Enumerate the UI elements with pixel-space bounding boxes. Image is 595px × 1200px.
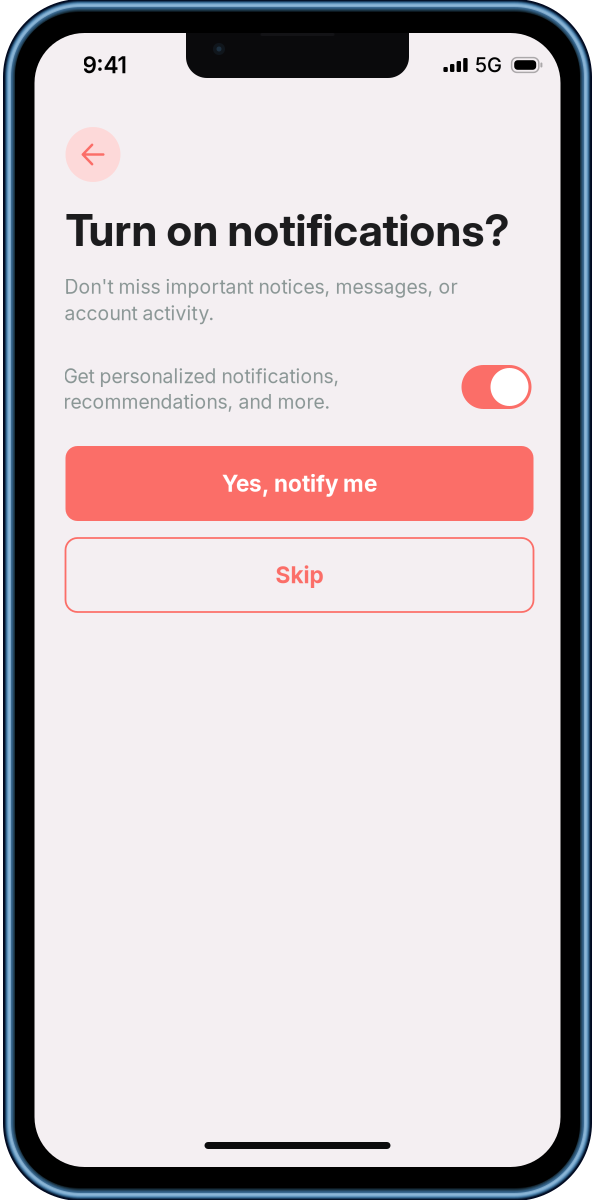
staticText: Skip — [275, 561, 323, 589]
button[interactable]: Yes, notify me — [65, 446, 533, 521]
staticText: Yes, notify me — [222, 470, 377, 497]
staticText: Don't miss important notices, messages, … — [64, 275, 457, 325]
staticText: 9:41 — [82, 51, 126, 79]
button[interactable]: Skip — [65, 538, 533, 612]
staticText: Get personalized notifications, recommen… — [63, 365, 339, 413]
staticText: Turn on notifications? — [65, 203, 509, 257]
staticText: 5G — [475, 53, 502, 77]
button[interactable]: Personalized notifications — [461, 365, 531, 409]
button[interactable]: Back — [65, 127, 120, 182]
